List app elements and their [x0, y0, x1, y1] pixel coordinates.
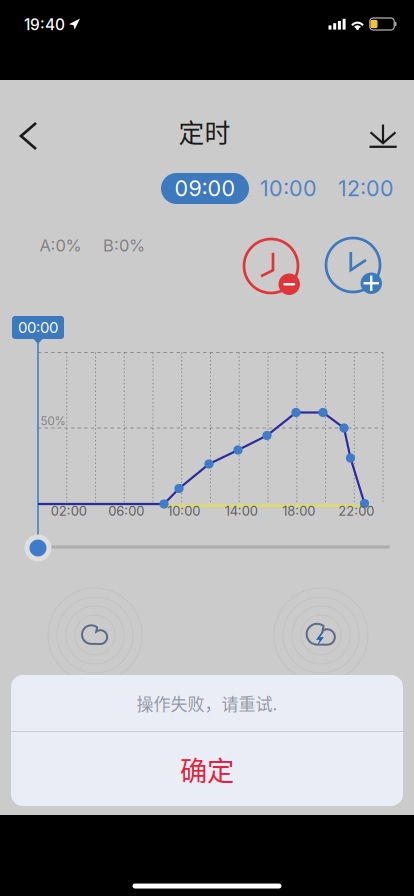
staticText: 19:40	[24, 15, 65, 34]
staticText: 50%	[40, 414, 65, 428]
staticText: 02:00	[51, 503, 87, 519]
button[interactable]: Remove timer	[242, 237, 300, 295]
button[interactable]: Download	[361, 114, 405, 158]
staticText: 09:00	[174, 175, 235, 201]
button[interactable]: 09:00	[161, 173, 249, 204]
staticText: 12:00	[338, 175, 394, 201]
staticText: 操作失败，请重试.	[136, 691, 277, 715]
staticText: B:0%	[103, 235, 145, 255]
staticText: 14:00	[225, 503, 258, 519]
staticText: A:0%	[39, 235, 81, 255]
staticText: 22:00	[338, 503, 374, 519]
button[interactable]: Time slider	[24, 534, 51, 561]
staticText: 18:00	[282, 503, 315, 519]
staticText: 10:00	[167, 503, 200, 519]
staticText: 定时	[178, 113, 230, 150]
staticText: 06:00	[108, 503, 144, 519]
staticText: 确定	[180, 749, 234, 789]
button[interactable]: Storm mode	[298, 612, 344, 658]
button[interactable]: Add timer	[324, 236, 382, 294]
button[interactable]: 确定	[11, 732, 403, 806]
button[interactable]: Back	[6, 114, 50, 158]
button[interactable]: Cloud mode	[72, 612, 118, 658]
button[interactable]: 12:00	[330, 173, 402, 204]
staticText: 00:00	[18, 318, 58, 336]
button[interactable]: 10:00	[252, 173, 324, 204]
staticText: 10:00	[260, 175, 317, 201]
